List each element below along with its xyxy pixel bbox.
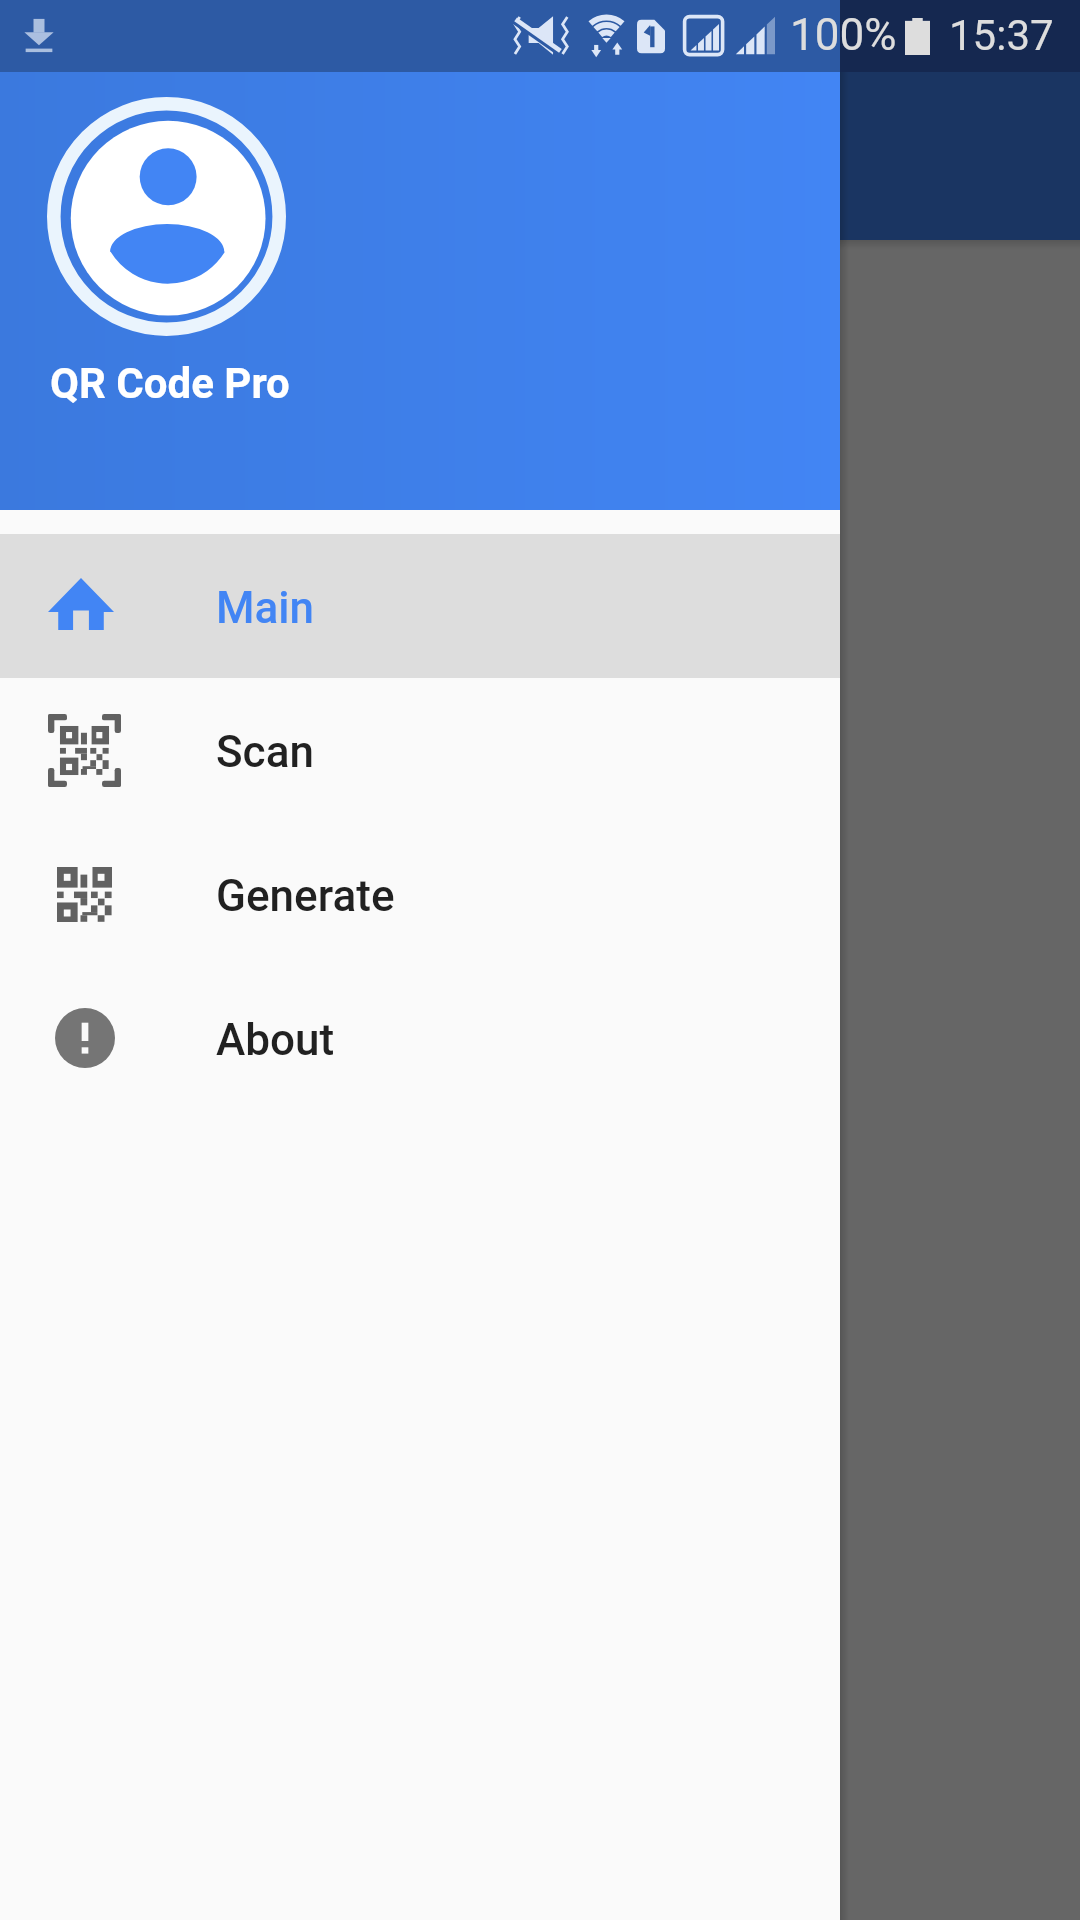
button[interactable]: Generate bbox=[0, 822, 840, 966]
staticText: 15:37 bbox=[949, 11, 1054, 60]
other: Generate bbox=[57, 867, 112, 922]
staticText: 100% bbox=[790, 9, 897, 61]
button[interactable]: About bbox=[0, 966, 840, 1110]
staticText: QR Code Pro bbox=[50, 359, 290, 408]
other: Main bbox=[48, 578, 114, 630]
button[interactable]: Scan bbox=[0, 678, 840, 822]
staticText: About bbox=[216, 1014, 335, 1066]
staticText: Scan bbox=[216, 726, 314, 778]
button[interactable]: Main bbox=[0, 534, 840, 678]
staticText: Main bbox=[216, 582, 315, 634]
other: About bbox=[55, 1008, 115, 1068]
button[interactable]: Account bbox=[0, 0, 840, 510]
other: Scan bbox=[48, 714, 121, 787]
staticText: Generate bbox=[216, 870, 395, 922]
button[interactable]: Account bbox=[47, 97, 286, 336]
